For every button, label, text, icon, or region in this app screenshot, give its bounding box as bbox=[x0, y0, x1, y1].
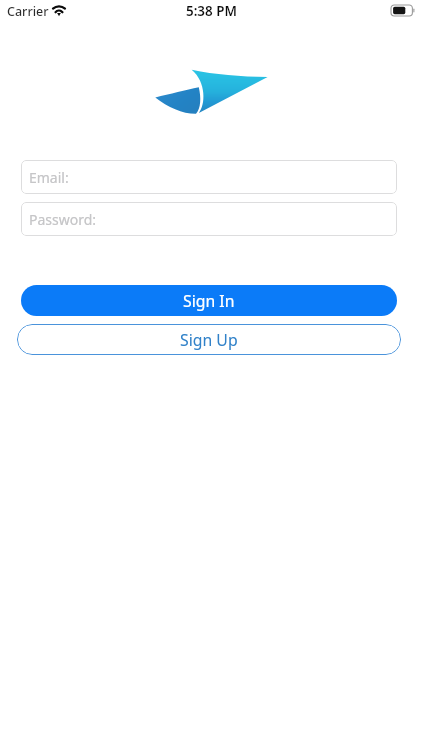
button[interactable]: Sign Up bbox=[17, 324, 401, 355]
other: Battery bbox=[391, 5, 415, 16]
button[interactable]: Sign In bbox=[21, 285, 397, 316]
staticText: Sign Up bbox=[180, 329, 238, 351]
staticText: 5:38 PM bbox=[186, 2, 237, 20]
button[interactable]: Email: bbox=[21, 160, 397, 194]
button[interactable]: Password: bbox=[21, 202, 397, 236]
staticText: Password: bbox=[29, 210, 97, 229]
staticText: Sign In bbox=[183, 290, 235, 312]
staticText: Carrier bbox=[7, 3, 49, 20]
other: App logo bbox=[155, 68, 268, 114]
staticText: Email: bbox=[29, 168, 69, 187]
other: Wi-Fi signal bbox=[51, 4, 67, 20]
